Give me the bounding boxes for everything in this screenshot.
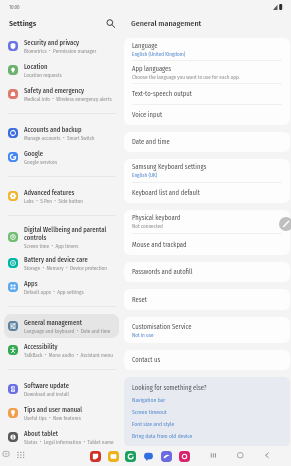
- button[interactable]: Security and privacy: [4, 34, 119, 58]
- button[interactable]: Physical keyboard: [124, 210, 290, 233]
- staticText: 10:00: [9, 4, 20, 10]
- button[interactable]: Advanced features: [4, 184, 119, 208]
- button[interactable]: General management: [4, 314, 119, 338]
- staticText: Status • Legal information • Tablet name: [24, 439, 114, 445]
- staticText: Biometrics • Permission manager: [24, 48, 97, 54]
- staticText: General management: [24, 319, 82, 327]
- staticText: Labs • S Pen • Side button: [24, 198, 83, 204]
- staticText: Security and privacy: [24, 39, 80, 47]
- button[interactable]: Contact us: [124, 350, 290, 370]
- staticText: Google services: [24, 159, 58, 165]
- staticText: Contact us: [132, 356, 161, 364]
- staticText: Software update: [24, 382, 70, 390]
- button[interactable]: Text-to-speech output: [124, 84, 290, 104]
- staticText: Useful tips • New features: [24, 415, 81, 421]
- staticText: Accessibility: [24, 343, 58, 351]
- staticText: Screen time • App timers: [24, 243, 79, 249]
- staticText: Not in use: [132, 332, 154, 338]
- button[interactable]: Office: [90, 451, 101, 462]
- button[interactable]: Software update: [4, 377, 119, 401]
- staticText: Customisation Service: [132, 323, 192, 331]
- staticText: Medical info • Wireless emergency alerts: [24, 96, 112, 102]
- staticText: Advanced features: [24, 189, 75, 197]
- button[interactable]: Keyboard list and default: [124, 183, 290, 203]
- button[interactable]: Screen timeout: [132, 409, 167, 416]
- staticText: Voice input: [132, 111, 163, 119]
- staticText: About tablet: [24, 430, 59, 438]
- button[interactable]: Tips and user manual: [4, 401, 119, 425]
- staticText: Manage accounts • Smart Switch: [24, 135, 95, 141]
- button[interactable]: All apps: [17, 451, 24, 458]
- button[interactable]: Google: [4, 145, 119, 169]
- staticText: Accounts and backup: [24, 126, 82, 134]
- staticText: English (UK): [132, 172, 158, 178]
- staticText: Samsung Keyboard settings: [132, 163, 207, 171]
- button[interactable]: Messages: [143, 451, 154, 462]
- button[interactable]: Samsung Keyboard settings: [124, 159, 290, 182]
- button[interactable]: Home: [237, 452, 244, 459]
- staticText: Text-to-speech output: [132, 90, 192, 98]
- staticText: Tips and user manual: [24, 406, 83, 414]
- button[interactable]: Internet: [161, 451, 172, 462]
- staticText: Choose the language you want to use for …: [132, 74, 240, 80]
- staticText: Settings: [9, 19, 37, 28]
- button[interactable]: Voice input: [124, 105, 290, 125]
- button[interactable]: Search: [104, 17, 117, 30]
- staticText: Looking for something else?: [132, 384, 207, 392]
- button[interactable]: Safety and emergency: [4, 82, 119, 106]
- staticText: English (United Kingdom): [132, 51, 186, 57]
- button[interactable]: Battery and device care: [4, 251, 119, 275]
- button[interactable]: Accessibility: [4, 338, 119, 362]
- button[interactable]: Bring data from old device: [132, 433, 193, 440]
- staticText: Language: [132, 42, 158, 50]
- button[interactable]: Mouse and trackpad: [124, 234, 290, 255]
- button[interactable]: Apps: [4, 275, 119, 299]
- staticText: Download and install: [24, 391, 69, 397]
- staticText: Location requests: [24, 72, 62, 78]
- staticText: Not connected: [132, 223, 163, 229]
- staticText: Storage • Memory • Device protection: [24, 265, 108, 271]
- button[interactable]: Customisation Service: [124, 317, 290, 343]
- button[interactable]: Hide taskbar: [3, 451, 9, 457]
- button[interactable]: My Files: [108, 451, 119, 462]
- button[interactable]: Date and time: [124, 132, 290, 152]
- button[interactable]: Camera: [179, 451, 190, 462]
- staticText: General management: [131, 19, 202, 29]
- staticText: Keyboard list and default: [132, 189, 200, 197]
- button[interactable]: Passwords and autofill: [124, 262, 290, 282]
- staticText: Physical keyboard: [132, 214, 181, 222]
- button[interactable]: Edit: [279, 217, 291, 231]
- staticText: Location: [24, 63, 48, 71]
- button[interactable]: Recent apps: [210, 452, 217, 459]
- button[interactable]: Digital Wellbeing and parental controls: [4, 223, 119, 251]
- staticText: TalkBack • Mono audio • Assistant menu: [24, 352, 113, 358]
- button[interactable]: App languages: [124, 61, 290, 83]
- staticText: Apps: [24, 280, 38, 288]
- button[interactable]: About tablet: [4, 425, 119, 449]
- staticText: Safety and emergency: [24, 87, 85, 95]
- staticText: Battery and device care: [24, 256, 88, 264]
- button[interactable]: Location: [4, 58, 119, 82]
- staticText: Mouse and trackpad: [132, 241, 187, 249]
- button[interactable]: Language: [124, 38, 290, 60]
- staticText: Date and time: [132, 138, 170, 146]
- staticText: Default apps • App settings: [24, 289, 84, 295]
- button[interactable]: Phone: [125, 451, 136, 462]
- button[interactable]: Back: [264, 452, 271, 459]
- staticText: Google: [24, 150, 44, 158]
- staticText: Passwords and autofill: [132, 268, 193, 276]
- staticText: Language and keyboard • Date and time: [24, 328, 111, 334]
- button[interactable]: Accounts and backup: [4, 121, 119, 145]
- button[interactable]: Navigation bar: [132, 397, 166, 404]
- staticText: App languages: [132, 65, 172, 73]
- button[interactable]: Reset: [124, 289, 290, 310]
- staticText: Digital Wellbeing and parental controls: [24, 226, 116, 242]
- button[interactable]: Font size and style: [132, 421, 175, 428]
- staticText: Reset: [132, 296, 147, 304]
